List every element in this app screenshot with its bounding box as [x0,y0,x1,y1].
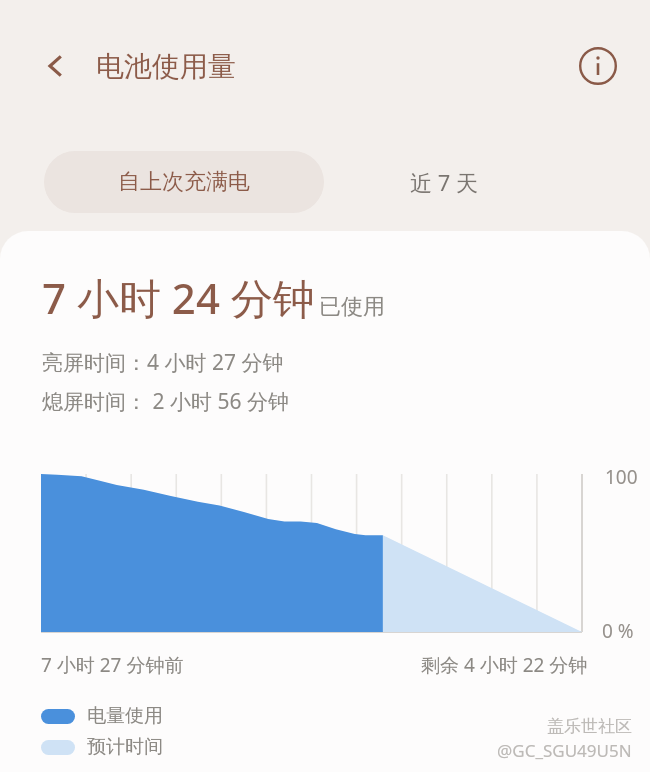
staticText: 电量使用 [87,704,163,728]
button[interactable]: Back [28,38,84,94]
staticText: 自上次充满电 [118,168,250,196]
staticText: 近 7 天 [410,167,479,197]
staticText: 0 % [602,618,634,644]
staticText: 亮屏时间：4 小时 27 分钟 [42,348,284,377]
staticText: 熄屏时间： 2 小时 56 分钟 [42,387,289,416]
staticText: 7 小时 24 分钟 [42,269,315,326]
staticText: 已使用 [319,293,385,321]
staticText: 预计时间 [87,735,163,759]
staticText: 剩余 4 小时 22 分钟 [421,652,588,678]
staticText: 7 小时 27 分钟前 [41,652,184,678]
staticText: @GC_SGU49U5N [497,739,632,762]
staticText: 100 [605,464,638,490]
staticText: 盖乐世社区 [547,716,632,737]
button[interactable]: 自上次充满电 [44,151,324,213]
staticText: 电池使用量 [96,49,236,84]
button[interactable]: Information [570,38,626,94]
button[interactable]: 近 7 天 [324,151,564,213]
